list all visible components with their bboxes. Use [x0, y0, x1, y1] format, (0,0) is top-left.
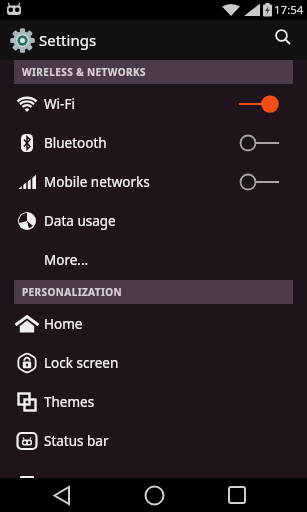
- staticText: WIRELESS & NETWORKS: [22, 65, 146, 79]
- staticText: More...: [44, 251, 89, 269]
- button[interactable]: [136, 478, 172, 512]
- button[interactable]: Data usage: [0, 201, 307, 240]
- button[interactable]: Bluetooth: [0, 123, 307, 162]
- button[interactable]: Home: [0, 304, 307, 343]
- staticText: Status bar: [44, 432, 109, 450]
- staticText: Wi-Fi: [44, 95, 75, 113]
- staticText: 17:54: [274, 2, 304, 18]
- button[interactable]: Lock screen: [0, 343, 307, 382]
- staticText: Lock screen: [44, 354, 119, 372]
- button[interactable]: Wi-Fi: [0, 84, 307, 123]
- staticText: Themes: [44, 393, 95, 411]
- staticText: Home: [44, 315, 83, 333]
- button[interactable]: [44, 478, 80, 512]
- button[interactable]: More...: [0, 240, 307, 280]
- staticText: Bluetooth: [44, 134, 107, 152]
- button[interactable]: [219, 478, 255, 512]
- button[interactable]: [266, 20, 300, 54]
- staticText: PERSONALIZATION: [22, 285, 123, 299]
- staticText: Mobile networks: [44, 173, 150, 191]
- button[interactable]: Themes: [0, 382, 307, 421]
- button[interactable]: Mobile networks: [0, 162, 307, 201]
- staticText: Data usage: [44, 212, 116, 230]
- staticText: Settings: [39, 30, 97, 50]
- button[interactable]: Status bar: [0, 421, 307, 460]
